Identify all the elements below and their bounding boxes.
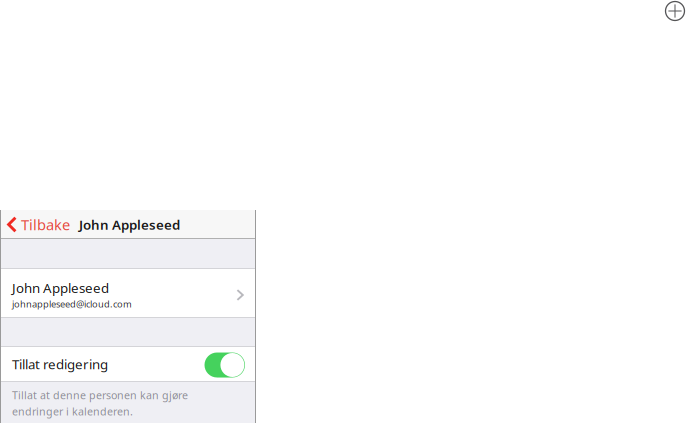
staticText: Tilbake [21,215,70,234]
staticText: endringer i kalenderen. [12,404,133,418]
staticText: Tillat at denne personen kan gjøre [12,388,188,402]
button[interactable]: John Appleseed [0,269,256,317]
button[interactable]: Tilbake [0,210,75,239]
staticText: John Appleseed [79,216,180,233]
button[interactable]: Add [664,0,686,22]
staticText: John Appleseed [12,279,109,297]
button[interactable]: Tillat redigering [204,352,245,377]
staticText: Tillat redigering [12,355,108,373]
staticText: johnappleseed@icloud.com [12,298,132,310]
